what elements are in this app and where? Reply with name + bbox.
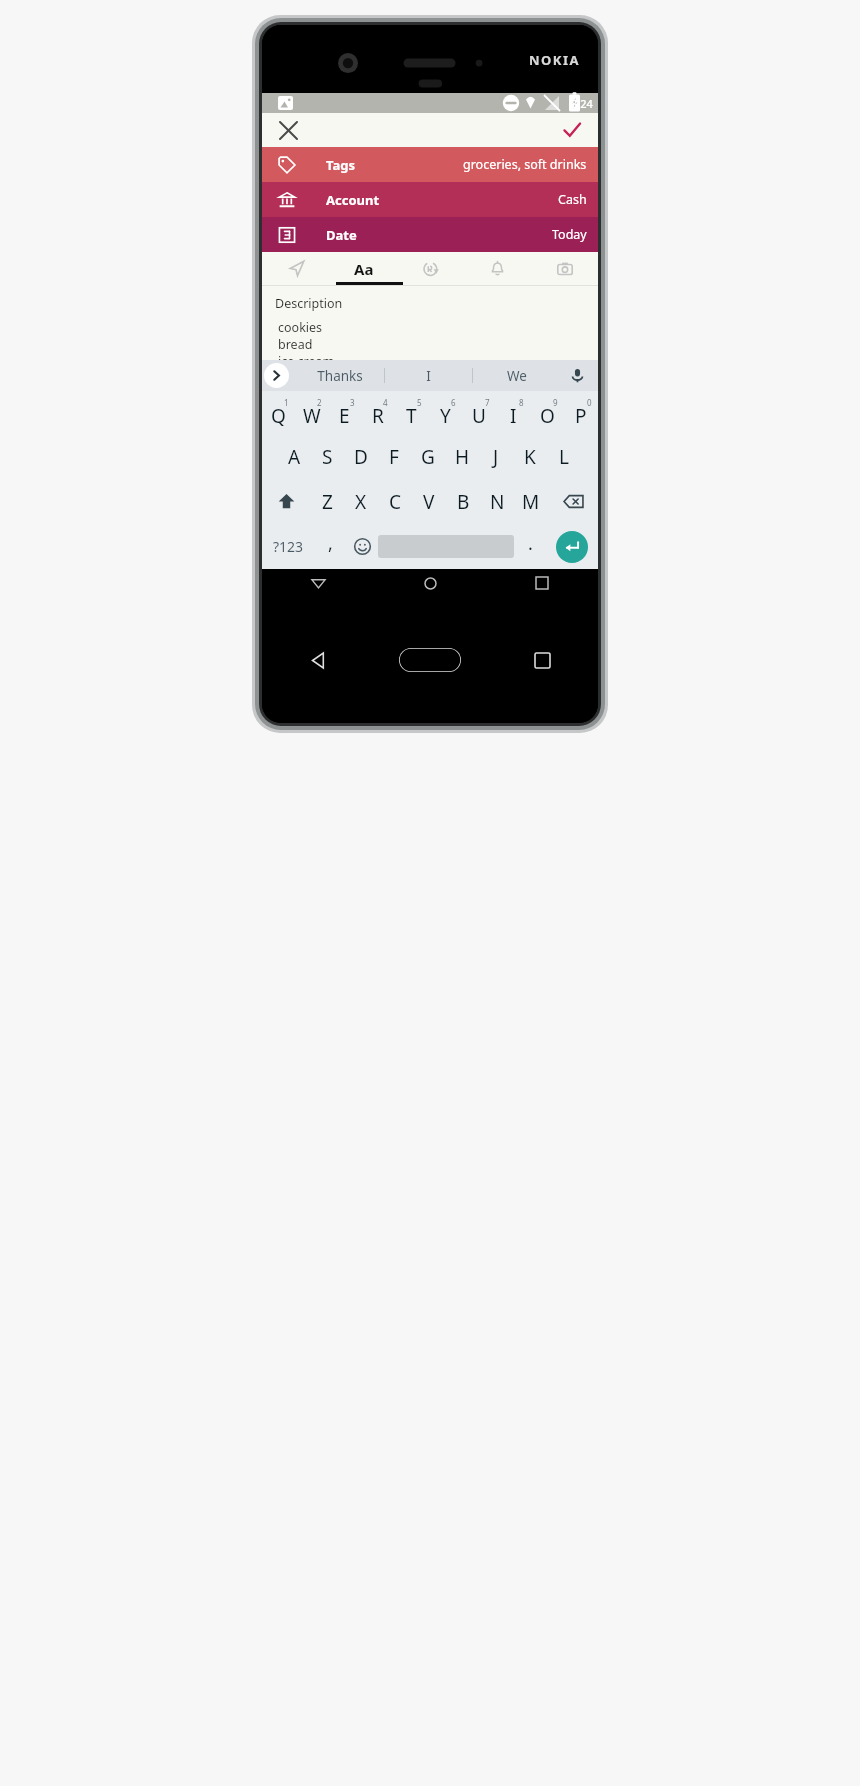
staticText: Cash xyxy=(558,191,587,208)
button[interactable]: , xyxy=(314,524,346,569)
staticText: W xyxy=(303,403,321,429)
button[interactable]: Navigate xyxy=(262,252,330,285)
button[interactable]: Save xyxy=(555,113,589,147)
button[interactable]: We xyxy=(473,360,560,391)
staticText: L xyxy=(559,444,569,470)
staticText: 8 xyxy=(519,397,524,408)
button[interactable]: N xyxy=(480,479,514,524)
button[interactable]: Thanks xyxy=(296,360,384,391)
staticText: bread xyxy=(278,336,313,353)
button[interactable]: Reminder xyxy=(464,252,531,285)
staticText: O xyxy=(540,403,555,429)
staticText: U xyxy=(472,403,486,429)
button[interactable]: Photo xyxy=(531,252,598,285)
button[interactable]: B xyxy=(446,479,480,524)
staticText: 2 xyxy=(317,397,322,408)
button[interactable]: Close xyxy=(271,113,305,147)
staticText: Today xyxy=(552,226,587,243)
staticText: NOKIA xyxy=(529,51,581,69)
staticText: ?123 xyxy=(273,537,304,556)
staticText: 7 xyxy=(485,397,490,408)
button[interactable]: G xyxy=(411,435,445,479)
button[interactable]: C xyxy=(378,479,412,524)
staticText: I xyxy=(426,367,431,385)
button[interactable]: 4 xyxy=(361,391,394,435)
staticText: T xyxy=(406,403,417,429)
button[interactable]: Text xyxy=(330,252,397,285)
button[interactable]: Tags xyxy=(262,147,598,182)
button[interactable]: Expand suggestions xyxy=(264,363,289,388)
staticText: 4 xyxy=(383,397,388,408)
button[interactable]: 0 xyxy=(564,391,598,435)
staticText: D xyxy=(354,444,368,470)
button[interactable]: L xyxy=(547,435,581,479)
staticText: R xyxy=(372,403,384,429)
staticText: Aa xyxy=(354,259,374,279)
button[interactable]: A xyxy=(278,435,311,479)
staticText: cookies xyxy=(278,319,323,336)
button[interactable]: Date xyxy=(262,217,598,252)
staticText: 5 xyxy=(417,397,422,408)
button[interactable]: Voice input xyxy=(560,360,594,391)
staticText: , xyxy=(328,531,333,556)
staticText: S xyxy=(322,444,333,470)
button[interactable]: K xyxy=(513,435,547,479)
staticText: Date xyxy=(326,226,357,244)
button[interactable]: Z xyxy=(311,479,344,524)
button[interactable]: Account xyxy=(262,182,598,217)
button[interactable]: Back xyxy=(262,597,374,723)
staticText: N xyxy=(490,489,505,515)
staticText: I xyxy=(510,403,517,429)
staticText: ice cream xyxy=(278,353,335,360)
staticText: E xyxy=(339,403,350,429)
button[interactable]: Home xyxy=(374,597,486,723)
button[interactable]: D xyxy=(344,435,377,479)
button[interactable]: X xyxy=(344,479,378,524)
staticText: 8:24 xyxy=(571,96,593,111)
button[interactable]: H xyxy=(445,435,479,479)
button[interactable]: Backspace xyxy=(548,479,598,524)
button[interactable]: 2 xyxy=(295,391,328,435)
button[interactable]: I xyxy=(385,360,472,391)
staticText: We xyxy=(507,367,527,385)
button[interactable]: Home xyxy=(374,569,486,597)
staticText: 3 xyxy=(350,397,355,408)
button[interactable]: . xyxy=(514,524,546,569)
button[interactable]: Emoji xyxy=(346,524,378,569)
button[interactable]: J xyxy=(479,435,513,479)
staticText: B xyxy=(457,489,470,515)
staticText: Y xyxy=(440,403,451,429)
staticText: M xyxy=(522,489,540,515)
staticText: groceries, soft drinks xyxy=(463,156,587,173)
staticText: G xyxy=(421,444,435,470)
staticText: K xyxy=(524,444,536,470)
staticText: A xyxy=(288,444,301,470)
button[interactable]: Enter xyxy=(546,524,598,569)
button[interactable]: Shift xyxy=(262,479,311,524)
staticText: Z xyxy=(322,489,333,515)
staticText: J xyxy=(493,444,499,470)
button[interactable]: Recents xyxy=(486,597,598,723)
button[interactable]: 1 xyxy=(262,391,295,435)
button[interactable]: S xyxy=(311,435,344,479)
button[interactable]: 8 xyxy=(496,391,530,435)
staticText: Account xyxy=(326,191,380,209)
button[interactable]: Recurring xyxy=(397,252,464,285)
button[interactable]: Recents xyxy=(486,569,598,597)
button[interactable]: F xyxy=(377,435,411,479)
staticText: . xyxy=(528,531,533,556)
button[interactable]: 5 xyxy=(394,391,428,435)
button[interactable]: Back xyxy=(262,569,374,597)
button[interactable]: M xyxy=(514,479,548,524)
button[interactable]: V xyxy=(412,479,446,524)
button[interactable]: 7 xyxy=(462,391,496,435)
staticText: Description xyxy=(275,295,343,312)
button[interactable]: 9 xyxy=(530,391,564,435)
staticText: C xyxy=(389,489,402,515)
button[interactable]: 3 xyxy=(328,391,361,435)
button[interactable]: ?123 xyxy=(262,524,314,569)
button[interactable]: 6 xyxy=(428,391,462,435)
staticText: Tags xyxy=(326,156,355,174)
staticText: F xyxy=(389,444,399,470)
